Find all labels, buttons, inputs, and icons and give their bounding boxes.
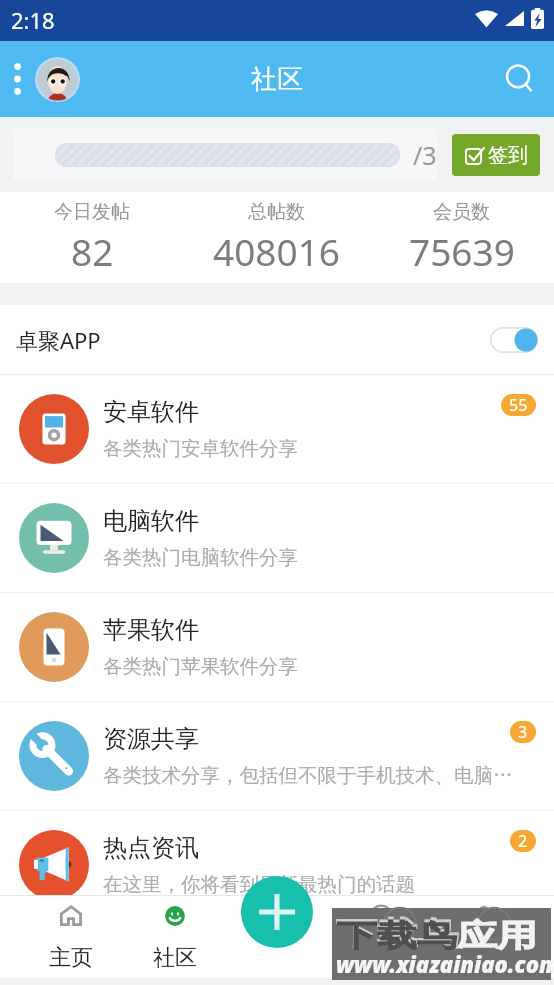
button[interactable]: More options <box>0 51 34 107</box>
staticText: 408016 <box>213 226 340 276</box>
button[interactable]: 主页 <box>19 896 123 978</box>
staticText: 主页 <box>49 944 93 972</box>
staticText: 社区 <box>153 944 197 972</box>
staticText: 发现 <box>359 944 403 972</box>
staticText: /3 <box>413 138 437 172</box>
button[interactable]: 卓聚APP <box>0 305 554 374</box>
button[interactable]: 电脑软件 <box>0 484 554 592</box>
staticText: 82 <box>71 226 114 276</box>
staticText: 下载鸟 <box>336 914 459 954</box>
button[interactable]: 今日发帖 <box>0 192 184 283</box>
button[interactable]: 总帖数 <box>184 192 369 283</box>
button[interactable]: 苹果软件 <box>0 593 554 701</box>
button[interactable]: Toggle 卓聚APP <box>490 327 538 353</box>
staticText: 应用 <box>457 916 537 954</box>
staticText: 55 <box>509 394 528 416</box>
staticText: 签到 <box>488 143 528 168</box>
staticText: 各类热门安卓软件分享 <box>103 436 298 461</box>
button[interactable]: 我的 <box>432 896 535 978</box>
button[interactable]: Search <box>492 48 554 110</box>
button[interactable]: 安卓软件 <box>0 375 554 483</box>
staticText: 2 <box>518 830 528 852</box>
staticText: 卓聚APP <box>16 325 101 355</box>
staticText: 各类技术分享，包括但不限于手机技术、电脑技术等 <box>103 763 531 788</box>
staticText: www.xiazainiao.com <box>336 949 554 979</box>
button[interactable]: 发现 <box>329 896 432 978</box>
staticText: 75639 <box>409 226 515 276</box>
staticText: 各类热门苹果软件分享 <box>103 654 298 679</box>
staticText: 我的 <box>462 944 506 972</box>
button[interactable]: 签到 <box>452 134 540 176</box>
staticText: 2:18 <box>11 5 55 35</box>
staticText: 下载鸟 <box>337 916 457 954</box>
staticText: 3 <box>518 721 528 743</box>
button[interactable]: 社区 <box>123 896 226 978</box>
staticText: 电脑软件 <box>103 506 199 536</box>
button[interactable]: 资源共享 <box>0 702 554 810</box>
staticText: 社区 <box>251 63 303 96</box>
staticText: 安卓软件 <box>103 397 199 427</box>
staticText: 苹果软件 <box>103 615 199 645</box>
staticText: 会员数 <box>433 200 490 224</box>
staticText: 总帖数 <box>248 200 305 224</box>
staticText: 资源共享 <box>103 724 199 754</box>
staticText: 热点资讯 <box>103 833 199 863</box>
button[interactable]: 会员数 <box>369 192 554 283</box>
staticText: 在这里，你将看到最新最热门的话题 <box>103 872 415 897</box>
button[interactable]: Profile avatar <box>33 55 81 103</box>
button[interactable]: 热点资讯 <box>0 811 554 919</box>
button[interactable]: Create new post <box>241 876 313 948</box>
staticText: 各类热门电脑软件分享 <box>103 545 298 570</box>
staticText: 今日发帖 <box>54 200 130 224</box>
